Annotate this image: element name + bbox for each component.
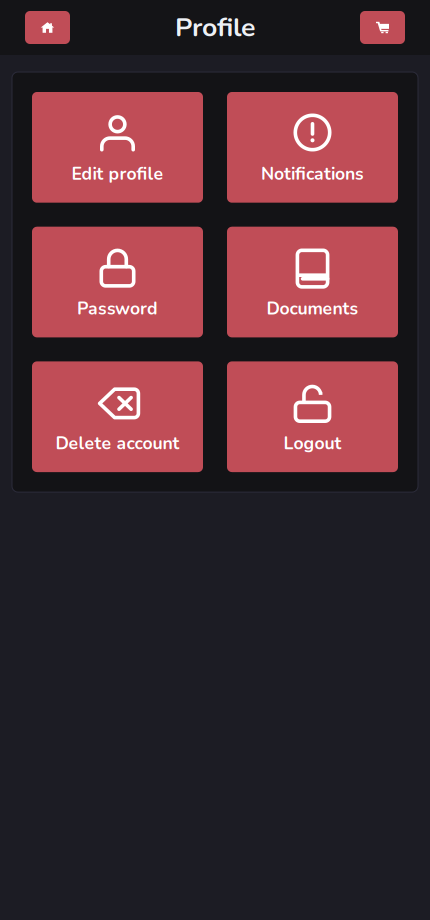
staticText: Logout: [283, 431, 341, 455]
staticText: Delete account: [55, 431, 179, 455]
staticText: Password: [77, 297, 158, 321]
button[interactable]: Home: [25, 11, 70, 44]
button[interactable]: Documents: [227, 227, 398, 337]
button[interactable]: Cart: [360, 11, 405, 44]
button[interactable]: Password: [32, 227, 203, 337]
button[interactable]: Notifications: [227, 92, 398, 203]
button[interactable]: Delete account: [32, 361, 203, 472]
staticText: Edit profile: [71, 162, 163, 186]
staticText: Profile: [175, 9, 255, 46]
staticText: Notifications: [261, 162, 364, 186]
button[interactable]: Logout: [227, 361, 398, 472]
button[interactable]: Edit profile: [32, 92, 203, 203]
staticText: Documents: [266, 297, 358, 321]
